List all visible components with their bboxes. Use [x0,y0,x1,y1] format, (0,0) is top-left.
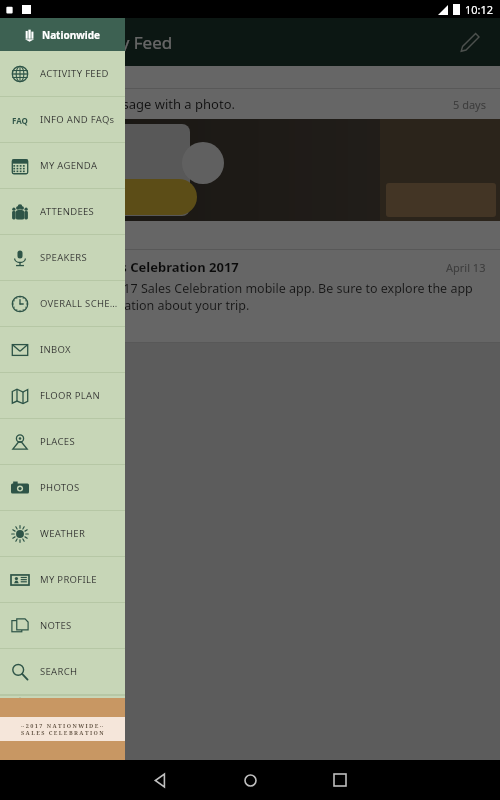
staticText: MY AGENDA [40,159,98,172]
staticText: 5 days [453,97,486,112]
button[interactable]: ACTIVITY FEED [0,51,125,96]
button[interactable]: Share [52,222,78,248]
staticText: S A L E S C E L E B R A T I O N [21,729,104,736]
button[interactable]: Recent apps [316,760,364,800]
button[interactable]: Back [136,760,184,800]
button[interactable]: SPEAKERS [0,235,125,280]
staticText: Welcome to the 2017 Sales Celebration mo… [14,280,486,314]
staticText: Welcome to Sales Celebration 2017 [14,258,446,276]
staticText: ATTENDEES [40,205,95,218]
staticText: April 13 [446,260,486,275]
button[interactable]: PLACES [0,419,125,464]
button[interactable]: FAQ [0,97,125,142]
staticText: FAQ [12,115,28,126]
button[interactable]: WEATHER [0,511,125,556]
staticText: WEATHER [40,527,86,540]
button[interactable]: SEARCH [0,649,125,694]
staticText: OVERALL SCHE… [40,297,118,310]
staticText: Activity Feed [72,31,173,54]
staticText: 10:12 [465,2,494,17]
staticText: SPEAKERS [40,251,88,264]
staticText: PLACES [40,435,75,448]
button[interactable]: Reply [14,315,40,341]
button[interactable]: INBOX [0,327,125,372]
staticText: INBOX [40,343,71,356]
staticText: SEARCH [40,665,78,678]
staticText: Here is a test message with a photo. [14,95,453,113]
staticText: FLOOR PLAN [40,389,100,402]
button[interactable]: MY AGENDA [0,143,125,188]
button[interactable]: Welcome to Sales Celebration 2017 [0,250,500,342]
button[interactable]: Share [52,315,78,341]
button[interactable]: MY PROFILE [0,557,125,602]
button[interactable]: ATTENDEES [0,189,125,234]
staticText: INFO AND FAQs [40,113,115,126]
staticText: MY PROFILE [40,573,97,586]
button[interactable]: OVERALL SCHE… [0,281,125,326]
button[interactable]: PHOTOS [0,465,125,510]
staticText: Nationwide [42,28,101,42]
button[interactable]: Compose post [450,22,490,62]
staticText: ·· 2 0 1 7 N A T I O N W I D E ·· [21,722,104,729]
button[interactable]: Home [226,760,274,800]
button[interactable]: Reply [14,222,40,248]
button[interactable]: Here is a test message with a photo. [0,89,500,249]
staticText: NOTES [40,619,72,632]
button[interactable]: FLOOR PLAN [0,373,125,418]
staticText: PHOTOS [40,481,80,494]
staticText: ACTIVITY FEED [40,67,109,80]
button[interactable]: NOTES [0,603,125,648]
